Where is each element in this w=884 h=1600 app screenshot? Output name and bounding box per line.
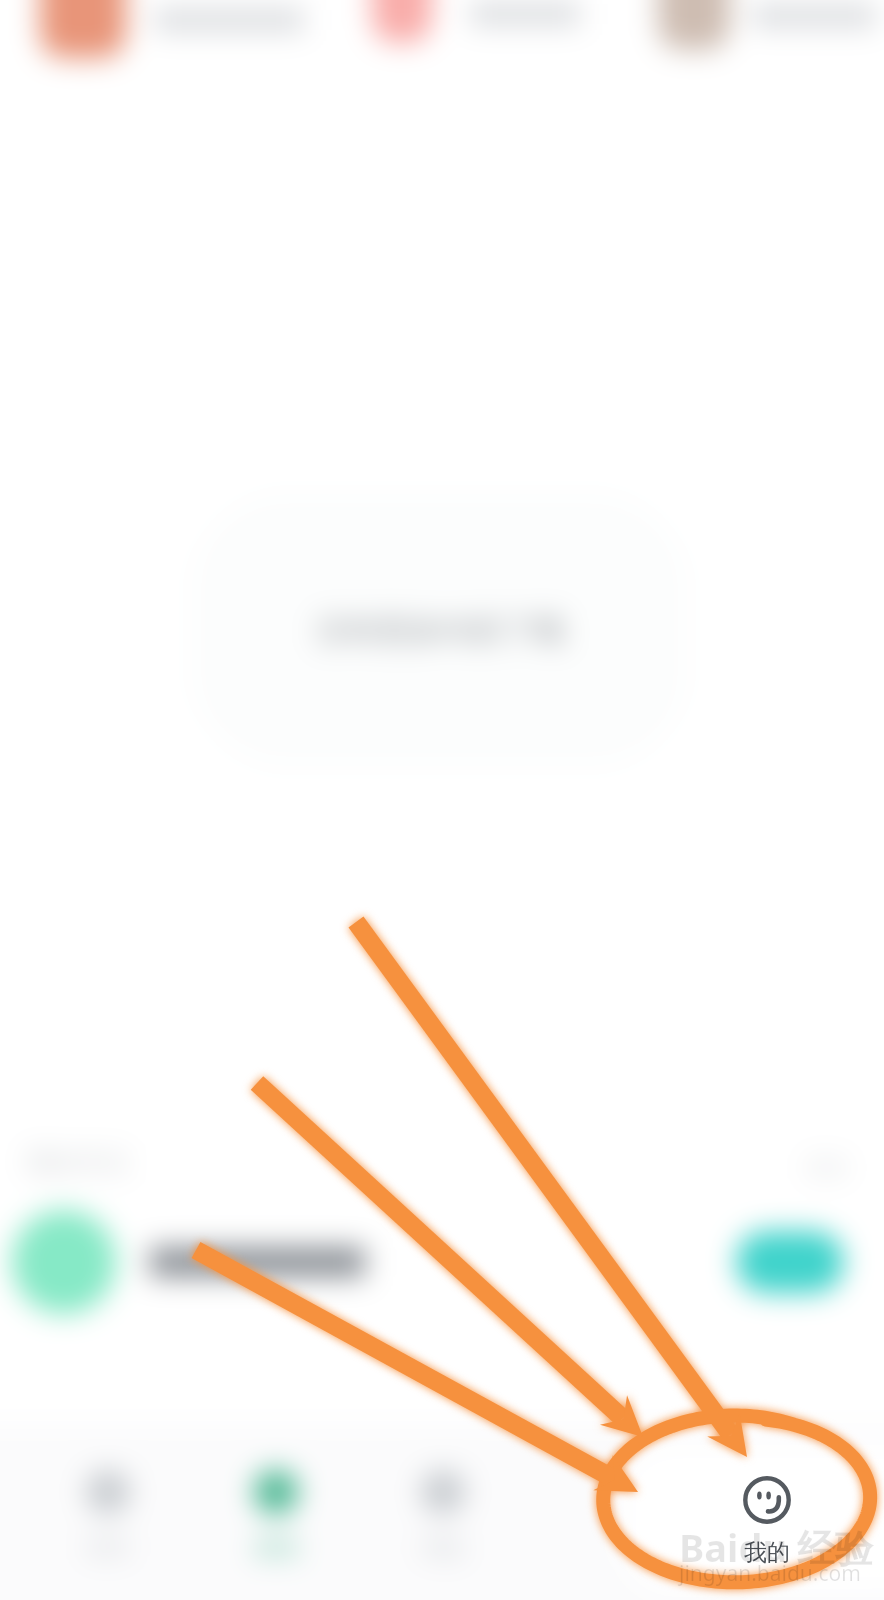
button[interactable]: 没有更多内容了哦	[192, 494, 687, 766]
staticText: 发现	[254, 1534, 298, 1562]
button[interactable]: 发现	[192, 1425, 359, 1600]
button[interactable]: 首页	[24, 1425, 192, 1600]
button[interactable]: 消息	[359, 1425, 526, 1600]
button[interactable]	[0, 1192, 884, 1332]
staticText: Baidu 经验	[679, 1521, 873, 1573]
button[interactable]	[372, 0, 432, 43]
button[interactable]	[40, 0, 126, 58]
staticText: 没有更多内容了哦	[316, 611, 564, 650]
button[interactable]	[658, 0, 730, 50]
staticText: jingyan.baidu.com	[679, 1559, 861, 1588]
button[interactable]: 我的	[707, 1472, 827, 1567]
button[interactable]	[736, 1231, 844, 1293]
staticText: 我的	[744, 1538, 790, 1567]
button[interactable]: 我的	[526, 1425, 693, 1600]
button[interactable]: 我的	[693, 1425, 860, 1600]
